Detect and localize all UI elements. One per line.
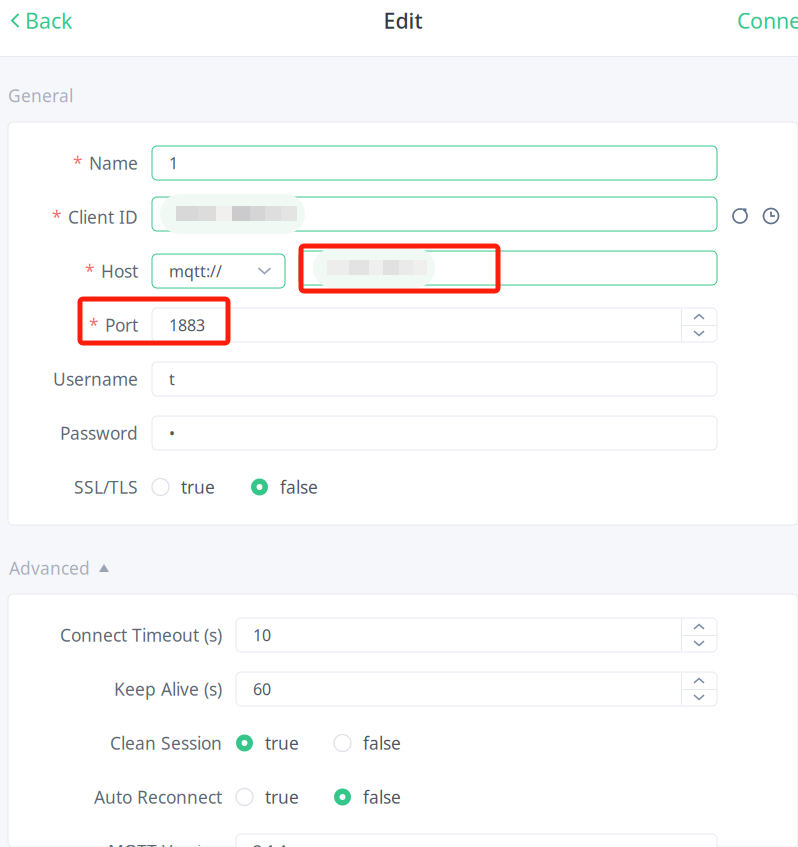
staticText: mqtt://: [169, 260, 222, 282]
staticText: *: [85, 259, 95, 282]
staticText: Clean Session: [110, 731, 222, 754]
staticText: false: [363, 731, 401, 754]
staticText: Password: [60, 421, 138, 444]
staticText: Back: [25, 6, 72, 35]
staticText: 3.1.1: [253, 840, 288, 847]
button[interactable]: Advanced: [9, 553, 109, 583]
staticText: *: [89, 313, 99, 336]
staticText: Client ID: [68, 205, 138, 228]
staticText: •: [169, 422, 175, 444]
button[interactable]: Increase: [681, 309, 716, 325]
button[interactable]: Regenerate Client ID: [730, 206, 750, 226]
button[interactable]: false: [251, 470, 318, 504]
button[interactable]: false: [334, 780, 401, 814]
button[interactable]: Increase: [681, 619, 716, 635]
button[interactable]: Back: [0, 0, 84, 41]
staticText: true: [181, 475, 215, 498]
staticText: 60: [253, 678, 271, 700]
staticText: 10: [253, 624, 271, 646]
staticText: *: [52, 205, 62, 228]
staticText: true: [265, 785, 299, 808]
button[interactable]: Decrease: [681, 636, 716, 651]
button[interactable]: Decrease: [681, 326, 716, 341]
button[interactable]: false: [334, 726, 401, 760]
staticText: General: [8, 84, 73, 107]
button[interactable]: Decrease: [681, 690, 716, 705]
staticText: MQTT Version: [108, 839, 222, 847]
button[interactable]: true: [152, 470, 215, 504]
button[interactable]: Connect: [740, 0, 798, 41]
staticText: Auto Reconnect: [94, 785, 222, 808]
staticText: true: [265, 731, 299, 754]
staticText: Host: [101, 259, 138, 282]
button[interactable]: Increase: [681, 673, 716, 689]
staticText: 1: [169, 152, 178, 174]
staticText: Advanced: [9, 556, 90, 579]
staticText: 1883: [169, 314, 205, 336]
staticText: Username: [53, 367, 138, 390]
staticText: Keep Alive (s): [114, 677, 222, 700]
staticText: Connect Timeout (s): [60, 623, 222, 646]
staticText: Edit: [383, 6, 422, 35]
button[interactable]: true: [236, 780, 299, 814]
staticText: false: [280, 475, 318, 498]
staticText: SSL/TLS: [74, 475, 138, 498]
staticText: Connect: [737, 6, 798, 35]
staticText: Port: [105, 313, 138, 336]
staticText: false: [363, 785, 401, 808]
staticText: t: [169, 368, 175, 390]
staticText: *: [73, 151, 83, 174]
staticText: Name: [89, 151, 138, 174]
button[interactable]: Client ID history: [761, 206, 781, 226]
button[interactable]: true: [236, 726, 299, 760]
